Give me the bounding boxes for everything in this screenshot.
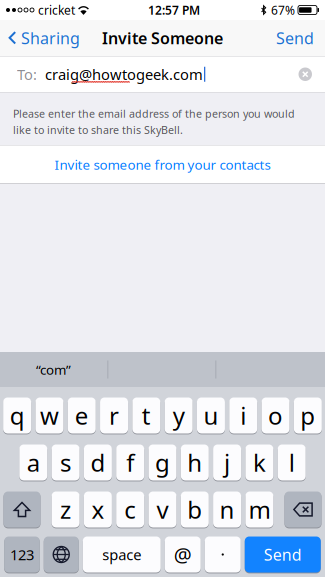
staticText: p bbox=[300, 400, 315, 431]
button[interactable]: j bbox=[213, 444, 241, 481]
button[interactable]: space bbox=[83, 536, 161, 573]
button[interactable]: v bbox=[148, 491, 176, 528]
staticText: q bbox=[10, 400, 25, 431]
staticText: 123 bbox=[10, 545, 34, 564]
staticText: like to invite to share this SkyBell. bbox=[13, 123, 183, 137]
staticText: e bbox=[75, 400, 89, 431]
button[interactable]: Send bbox=[245, 536, 321, 573]
staticText: t bbox=[142, 400, 151, 431]
button[interactable]: Clear text bbox=[286, 57, 325, 92]
staticText: o bbox=[268, 400, 283, 431]
staticText: x bbox=[91, 494, 104, 525]
button[interactable]: u bbox=[197, 397, 225, 434]
button[interactable]: g bbox=[148, 444, 176, 481]
staticText: Please enter the email address of the pe… bbox=[13, 107, 295, 121]
staticText: “com” bbox=[36, 361, 71, 378]
staticText: i bbox=[240, 400, 246, 431]
staticText: z bbox=[60, 494, 71, 525]
staticText: Sharing bbox=[21, 27, 80, 49]
button[interactable]: d bbox=[84, 444, 112, 481]
button[interactable]: k bbox=[245, 444, 273, 481]
button[interactable]: “com” bbox=[0, 352, 107, 387]
staticText: m bbox=[248, 494, 270, 525]
staticText: Send bbox=[264, 544, 302, 565]
button[interactable]: 123 bbox=[4, 536, 40, 573]
button[interactable]: l bbox=[278, 444, 306, 481]
staticText: To: bbox=[17, 64, 37, 84]
staticText: w bbox=[40, 400, 59, 431]
staticText: g bbox=[155, 447, 170, 478]
staticText: u bbox=[203, 400, 218, 431]
staticText: craig@howtogeek.com bbox=[45, 64, 203, 84]
button[interactable]: h bbox=[181, 444, 209, 481]
staticText: b bbox=[187, 494, 202, 525]
button[interactable]: a bbox=[19, 444, 47, 481]
button[interactable]: Next keyboard bbox=[44, 536, 79, 573]
staticText: d bbox=[90, 447, 105, 478]
staticText: Invite someone from your contacts bbox=[54, 156, 270, 173]
button[interactable]: i bbox=[229, 397, 257, 434]
button[interactable]: y bbox=[165, 397, 193, 434]
staticText: c bbox=[124, 494, 136, 525]
button[interactable]: f bbox=[116, 444, 144, 481]
button[interactable]: m bbox=[245, 491, 273, 528]
button[interactable]: z bbox=[52, 491, 80, 528]
staticText: v bbox=[156, 494, 168, 525]
staticText: a bbox=[27, 447, 40, 478]
staticText: j bbox=[224, 447, 230, 478]
button[interactable]: s bbox=[52, 444, 80, 481]
button[interactable]: x bbox=[84, 491, 112, 528]
staticText: l bbox=[289, 447, 295, 478]
staticText: k bbox=[253, 447, 266, 478]
staticText: n bbox=[220, 494, 235, 525]
button[interactable]: q bbox=[3, 397, 31, 434]
staticText: 67% bbox=[271, 2, 295, 18]
staticText: Invite Someone bbox=[102, 27, 223, 49]
button[interactable]: w bbox=[35, 397, 63, 434]
button[interactable]: c bbox=[116, 491, 144, 528]
button[interactable]: e bbox=[68, 397, 96, 434]
staticText: Send bbox=[276, 27, 314, 49]
staticText: r bbox=[109, 400, 119, 431]
staticText: 12:57 PM bbox=[148, 2, 200, 18]
button[interactable]: r bbox=[100, 397, 128, 434]
button[interactable]: o bbox=[262, 397, 290, 434]
staticText: cricket bbox=[38, 2, 75, 18]
button[interactable]: Sharing bbox=[0, 20, 88, 56]
button[interactable]: t bbox=[132, 397, 160, 434]
button[interactable]: p bbox=[294, 397, 322, 434]
staticText: f bbox=[126, 447, 134, 478]
button[interactable]: Delete bbox=[284, 491, 321, 528]
staticText: @ bbox=[174, 541, 192, 568]
button[interactable]: Shift bbox=[3, 491, 40, 528]
staticText: h bbox=[187, 447, 202, 478]
button[interactable]: b bbox=[181, 491, 209, 528]
button[interactable]: @ bbox=[165, 536, 201, 573]
button[interactable]: Period bbox=[205, 536, 241, 573]
button[interactable]: Send bbox=[266, 20, 325, 56]
staticText: y bbox=[173, 400, 185, 431]
staticText: s bbox=[60, 447, 71, 478]
staticText: space bbox=[102, 545, 141, 564]
button[interactable]: n bbox=[213, 491, 241, 528]
button[interactable]: Invite someone from your contacts bbox=[0, 145, 325, 183]
